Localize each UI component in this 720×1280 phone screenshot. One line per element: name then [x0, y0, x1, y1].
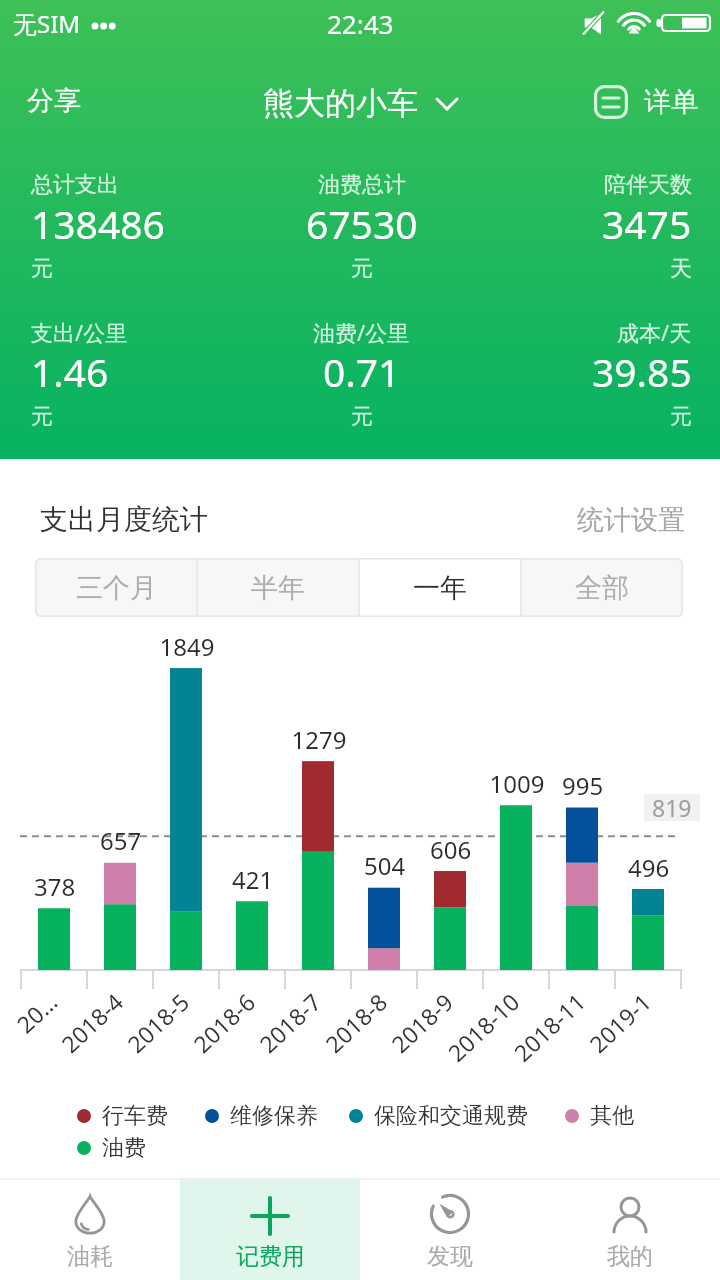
staticText: 138486 — [31, 197, 165, 250]
staticText: 我的 — [607, 1242, 653, 1271]
staticText: 总计支出 — [31, 171, 119, 199]
staticText: 分享 — [27, 84, 81, 118]
button[interactable]: 详单 — [584, 77, 720, 127]
button[interactable]: 油耗 — [0, 1178, 180, 1280]
staticText: 39.85 — [592, 345, 692, 398]
staticText: 成本/天 — [617, 317, 692, 347]
staticText: 元 — [351, 403, 373, 431]
staticText: 一年 — [413, 571, 467, 605]
staticText: 行车费 — [102, 1102, 168, 1130]
staticText: 陪伴天数 — [604, 171, 692, 199]
button[interactable]: 我的 — [540, 1178, 720, 1280]
staticText: 支出/公里 — [31, 317, 128, 347]
staticText: 详单 — [644, 85, 698, 119]
button[interactable]: 熊大的小车 — [255, 76, 466, 131]
staticText: 油费 — [102, 1134, 146, 1162]
staticText: 全部 — [575, 571, 629, 605]
button[interactable]: 记费用 — [180, 1178, 360, 1280]
staticText: 油耗 — [67, 1242, 113, 1271]
staticText: 0.71 — [323, 345, 401, 398]
staticText: 天 — [670, 255, 692, 283]
staticText: 统计设置 — [577, 503, 685, 537]
staticText: 元 — [31, 403, 53, 431]
staticText: 元 — [670, 403, 692, 431]
staticText: 支出月度统计 — [40, 502, 208, 537]
button[interactable]: 分享 — [0, 70, 108, 132]
staticText: 半年 — [251, 571, 305, 605]
staticText: 维修保养 — [230, 1102, 318, 1130]
button[interactable]: 统计设置 — [571, 497, 691, 543]
staticText: 1.46 — [31, 345, 109, 398]
button[interactable]: 半年 — [197, 558, 359, 617]
staticText: 67530 — [306, 197, 418, 250]
staticText: 3475 — [602, 197, 692, 250]
button[interactable]: 三个月 — [35, 558, 197, 617]
staticText: 三个月 — [76, 571, 157, 605]
staticText: 发现 — [427, 1242, 473, 1271]
button[interactable]: 一年 — [359, 558, 521, 617]
staticText: 元 — [351, 255, 373, 283]
staticText: 元 — [31, 255, 53, 283]
staticText: 油费/公里 — [313, 317, 410, 347]
button[interactable]: 发现 — [360, 1178, 540, 1280]
staticText: 记费用 — [236, 1242, 305, 1271]
staticText: 熊大的小车 — [263, 84, 418, 123]
staticText: 油费总计 — [318, 171, 406, 199]
staticText: 无SIM — [13, 7, 81, 40]
staticText: 其他 — [590, 1102, 634, 1130]
staticText: 保险和交通规费 — [374, 1102, 528, 1130]
staticText: 22:43 — [327, 6, 394, 41]
button[interactable]: 全部 — [521, 558, 683, 617]
